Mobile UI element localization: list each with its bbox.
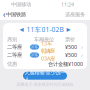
staticText: 01车 <box>30 44 38 50</box>
staticText: 13车02A座 <box>41 40 55 54</box>
staticText: 二等座 <box>7 52 22 58</box>
staticText: 选座服务 <box>65 11 85 18</box>
staticText: 13车03A座 <box>41 48 55 62</box>
staticText: 席别 <box>7 36 17 43</box>
button[interactable]: 人脸核验·至少选一人 <box>23 72 67 80</box>
staticText: 票价 <box>65 36 75 43</box>
staticText: 合计金额¥1000 <box>48 60 83 68</box>
staticText: ¥500 <box>65 51 77 59</box>
staticText: ¥500 <box>65 43 77 51</box>
button[interactable]: 二等座 <box>3 43 87 51</box>
button[interactable]: 选座服务 <box>60 9 90 20</box>
staticText: 二等座 <box>7 44 22 50</box>
staticText: 中国移动 <box>11 1 31 8</box>
button[interactable]: 二等座 <box>3 51 87 59</box>
staticText: ◀ <box>19 26 23 33</box>
staticText: 11:24 <box>61 1 74 8</box>
staticText: 中国铁路 <box>6 11 26 18</box>
staticText: ▶ <box>66 26 70 33</box>
staticText: 01车 <box>30 52 38 58</box>
staticText: › <box>81 43 83 51</box>
button[interactable]: ‹ <box>0 9 29 20</box>
staticText: 11车01-02B <box>26 25 63 34</box>
staticText: 车厢座位 <box>34 36 54 43</box>
staticText: › <box>81 51 83 59</box>
staticText: 优惠 <box>7 61 17 67</box>
button[interactable]: Next car <box>66 26 70 33</box>
button[interactable]: Previous car <box>19 26 23 33</box>
staticText: ‹ <box>3 9 5 20</box>
staticText: 人脸核验·至少选一人 <box>24 69 65 82</box>
staticText: 温馨提示·请按规定时间完成核验 <box>16 82 73 87</box>
